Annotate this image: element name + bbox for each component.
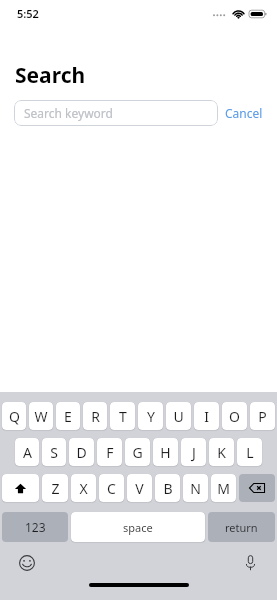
staticText: K bbox=[217, 443, 226, 462]
staticText: E bbox=[64, 407, 72, 426]
staticText: G bbox=[132, 443, 143, 462]
staticText: X bbox=[79, 479, 88, 498]
button[interactable]: Q bbox=[2, 402, 26, 430]
button[interactable]: A bbox=[15, 438, 39, 466]
staticText: return bbox=[225, 520, 258, 535]
staticText: Y bbox=[147, 407, 155, 426]
button[interactable]: U bbox=[166, 402, 191, 430]
button[interactable]: K bbox=[209, 438, 234, 466]
button[interactable]: Y bbox=[138, 402, 163, 430]
button[interactable]: 123 bbox=[2, 512, 68, 542]
button[interactable]: S bbox=[42, 438, 66, 466]
staticText: Q bbox=[9, 407, 20, 426]
staticText: Cancel bbox=[225, 105, 263, 121]
staticText: L bbox=[246, 443, 254, 462]
button[interactable]: G bbox=[125, 438, 150, 466]
button[interactable]: Backspace bbox=[239, 474, 275, 502]
staticText: R bbox=[91, 407, 100, 426]
button[interactable]: D bbox=[69, 438, 94, 466]
staticText: A bbox=[23, 443, 32, 462]
staticText: M bbox=[217, 479, 230, 498]
staticText: space bbox=[123, 520, 153, 535]
staticText: 5:52 bbox=[17, 6, 39, 21]
button[interactable]: B bbox=[155, 474, 180, 502]
staticText: W bbox=[34, 407, 48, 426]
staticText: F bbox=[106, 443, 114, 462]
button[interactable]: C bbox=[99, 474, 124, 502]
staticText: J bbox=[192, 443, 196, 462]
button[interactable]: W bbox=[29, 402, 53, 430]
button[interactable]: Z bbox=[42, 474, 68, 502]
staticText: 123 bbox=[25, 519, 46, 535]
button[interactable]: P bbox=[250, 402, 275, 430]
button[interactable]: H bbox=[153, 438, 178, 466]
button[interactable]: O bbox=[222, 402, 247, 430]
button[interactable]: N bbox=[183, 474, 208, 502]
button[interactable]: I bbox=[194, 402, 219, 430]
button[interactable]: T bbox=[110, 402, 135, 430]
staticText: C bbox=[107, 479, 116, 498]
button[interactable]: X bbox=[71, 474, 96, 502]
button[interactable]: Cancel bbox=[218, 101, 264, 125]
button[interactable]: V bbox=[127, 474, 152, 502]
staticText: Z bbox=[51, 479, 60, 498]
staticText: S bbox=[50, 443, 58, 462]
button[interactable]: J bbox=[181, 438, 206, 466]
staticText: U bbox=[173, 407, 184, 426]
button[interactable]: Search keyword bbox=[14, 100, 218, 126]
button[interactable]: F bbox=[97, 438, 122, 466]
staticText: Search bbox=[15, 61, 86, 90]
staticText: H bbox=[160, 443, 171, 462]
staticText: P bbox=[258, 407, 267, 426]
button[interactable]: Shift bbox=[2, 474, 39, 502]
button[interactable]: M bbox=[211, 474, 236, 502]
staticText: B bbox=[163, 479, 173, 498]
button[interactable]: L bbox=[237, 438, 262, 466]
button[interactable]: Emoji bbox=[16, 552, 38, 574]
staticText: V bbox=[135, 479, 144, 498]
staticText: N bbox=[190, 479, 201, 498]
button[interactable]: R bbox=[83, 402, 107, 430]
staticText: D bbox=[76, 443, 87, 462]
button[interactable]: space bbox=[71, 512, 205, 542]
button[interactable]: return bbox=[208, 512, 275, 542]
staticText: T bbox=[119, 407, 127, 426]
button[interactable]: E bbox=[56, 402, 80, 430]
staticText: Search keyword bbox=[24, 105, 113, 121]
button[interactable]: Dictation bbox=[239, 552, 261, 574]
staticText: O bbox=[229, 407, 240, 426]
staticText: I bbox=[204, 407, 209, 426]
